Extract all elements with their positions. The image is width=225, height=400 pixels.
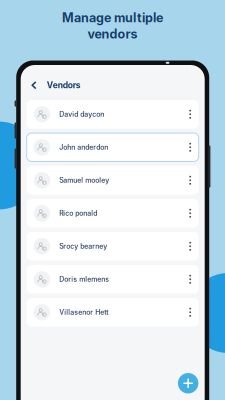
staticText: Samuel mooley [59, 176, 109, 184]
staticText: Rico ponald [59, 209, 97, 217]
staticText: Manage multiple [62, 10, 163, 25]
button[interactable]: John anderdon [27, 133, 199, 161]
button[interactable]: Samuel mooley [27, 166, 199, 194]
button[interactable]: Rico ponald [27, 199, 199, 227]
button[interactable]: Villasenor Hett [27, 298, 199, 326]
button[interactable]: Back [27, 75, 41, 95]
button[interactable]: Srocy bearney [27, 232, 199, 260]
button[interactable]: Doris mlemens [27, 265, 199, 293]
button[interactable]: David daycon [27, 100, 199, 128]
button[interactable]: Add vendor [178, 373, 198, 393]
staticText: John anderdon [59, 143, 108, 151]
staticText: Doris mlemens [59, 275, 109, 283]
staticText: David daycon [59, 110, 104, 118]
staticText: vendors [87, 26, 137, 42]
staticText: Vendors [47, 80, 81, 90]
staticText: Srocy bearney [59, 242, 107, 250]
staticText: Villasenor Hett [59, 308, 108, 316]
